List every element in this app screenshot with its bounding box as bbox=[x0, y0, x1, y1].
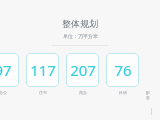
staticText: 97 bbox=[0, 60, 12, 80]
button[interactable]: 207 bbox=[66, 53, 99, 95]
staticText: 76 bbox=[114, 60, 132, 80]
staticText: 117 bbox=[30, 60, 56, 80]
staticText: 办公 bbox=[0, 90, 7, 95]
staticText: 住宅 bbox=[39, 90, 47, 95]
staticText: 科研 bbox=[119, 90, 127, 95]
button[interactable]: 76 bbox=[106, 53, 139, 95]
staticText: 单位：万平方米 bbox=[63, 33, 98, 39]
button[interactable]: 97 bbox=[0, 53, 19, 95]
staticText: 整体规划 bbox=[62, 18, 98, 29]
button[interactable]: 117 bbox=[26, 53, 59, 95]
staticText: 商办 bbox=[79, 90, 87, 95]
staticText: 207 bbox=[70, 60, 96, 80]
